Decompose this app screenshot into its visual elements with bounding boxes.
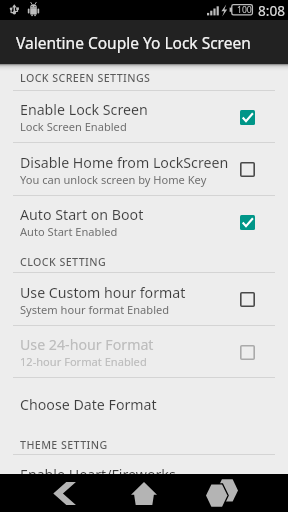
staticText: LOCK SCREEN SETTINGS bbox=[20, 71, 151, 86]
staticText: THEME SETTING bbox=[20, 438, 108, 453]
button[interactable]: Use Custom hour format bbox=[0, 273, 288, 326]
button[interactable]: Enable Lock Screen bbox=[0, 91, 288, 143]
staticText: Disable Home from LockScreen bbox=[20, 153, 229, 172]
staticText: Lock Screen Enabled bbox=[20, 119, 127, 134]
staticText: 100 bbox=[237, 4, 252, 16]
button[interactable]: Use 24-hour Format bbox=[0, 326, 288, 378]
staticText: Use Custom hour format bbox=[20, 283, 186, 302]
button[interactable]: Recent apps bbox=[194, 474, 250, 512]
button[interactable]: Back bbox=[37, 474, 93, 512]
staticText: Enable Heart/Fireworks bbox=[20, 465, 176, 474]
staticText: Valentine Couple Yo Lock Screen bbox=[16, 32, 251, 53]
staticText: You can unlock screen by Home Key bbox=[20, 172, 207, 187]
staticText: 12-hour Format Enabled bbox=[20, 354, 147, 369]
staticText: Auto Start on Boot bbox=[20, 205, 144, 224]
staticText: CLOCK SETTING bbox=[20, 255, 107, 270]
button[interactable]: Auto Start on Boot bbox=[0, 196, 288, 248]
button[interactable]: Choose Date Format bbox=[0, 378, 288, 431]
staticText: System hour format Enabled bbox=[20, 302, 170, 317]
staticText: 8:08 bbox=[258, 1, 285, 20]
staticText: Auto Start Enabled bbox=[20, 224, 118, 239]
staticText: Enable Lock Screen bbox=[20, 100, 148, 119]
button[interactable]: Home bbox=[116, 474, 172, 512]
staticText: Choose Date Format bbox=[20, 395, 157, 414]
button[interactable]: Disable Home from LockScreen bbox=[0, 143, 288, 196]
staticText: Use 24-hour Format bbox=[20, 335, 154, 354]
button[interactable]: Enable Heart/Fireworks bbox=[0, 455, 288, 474]
